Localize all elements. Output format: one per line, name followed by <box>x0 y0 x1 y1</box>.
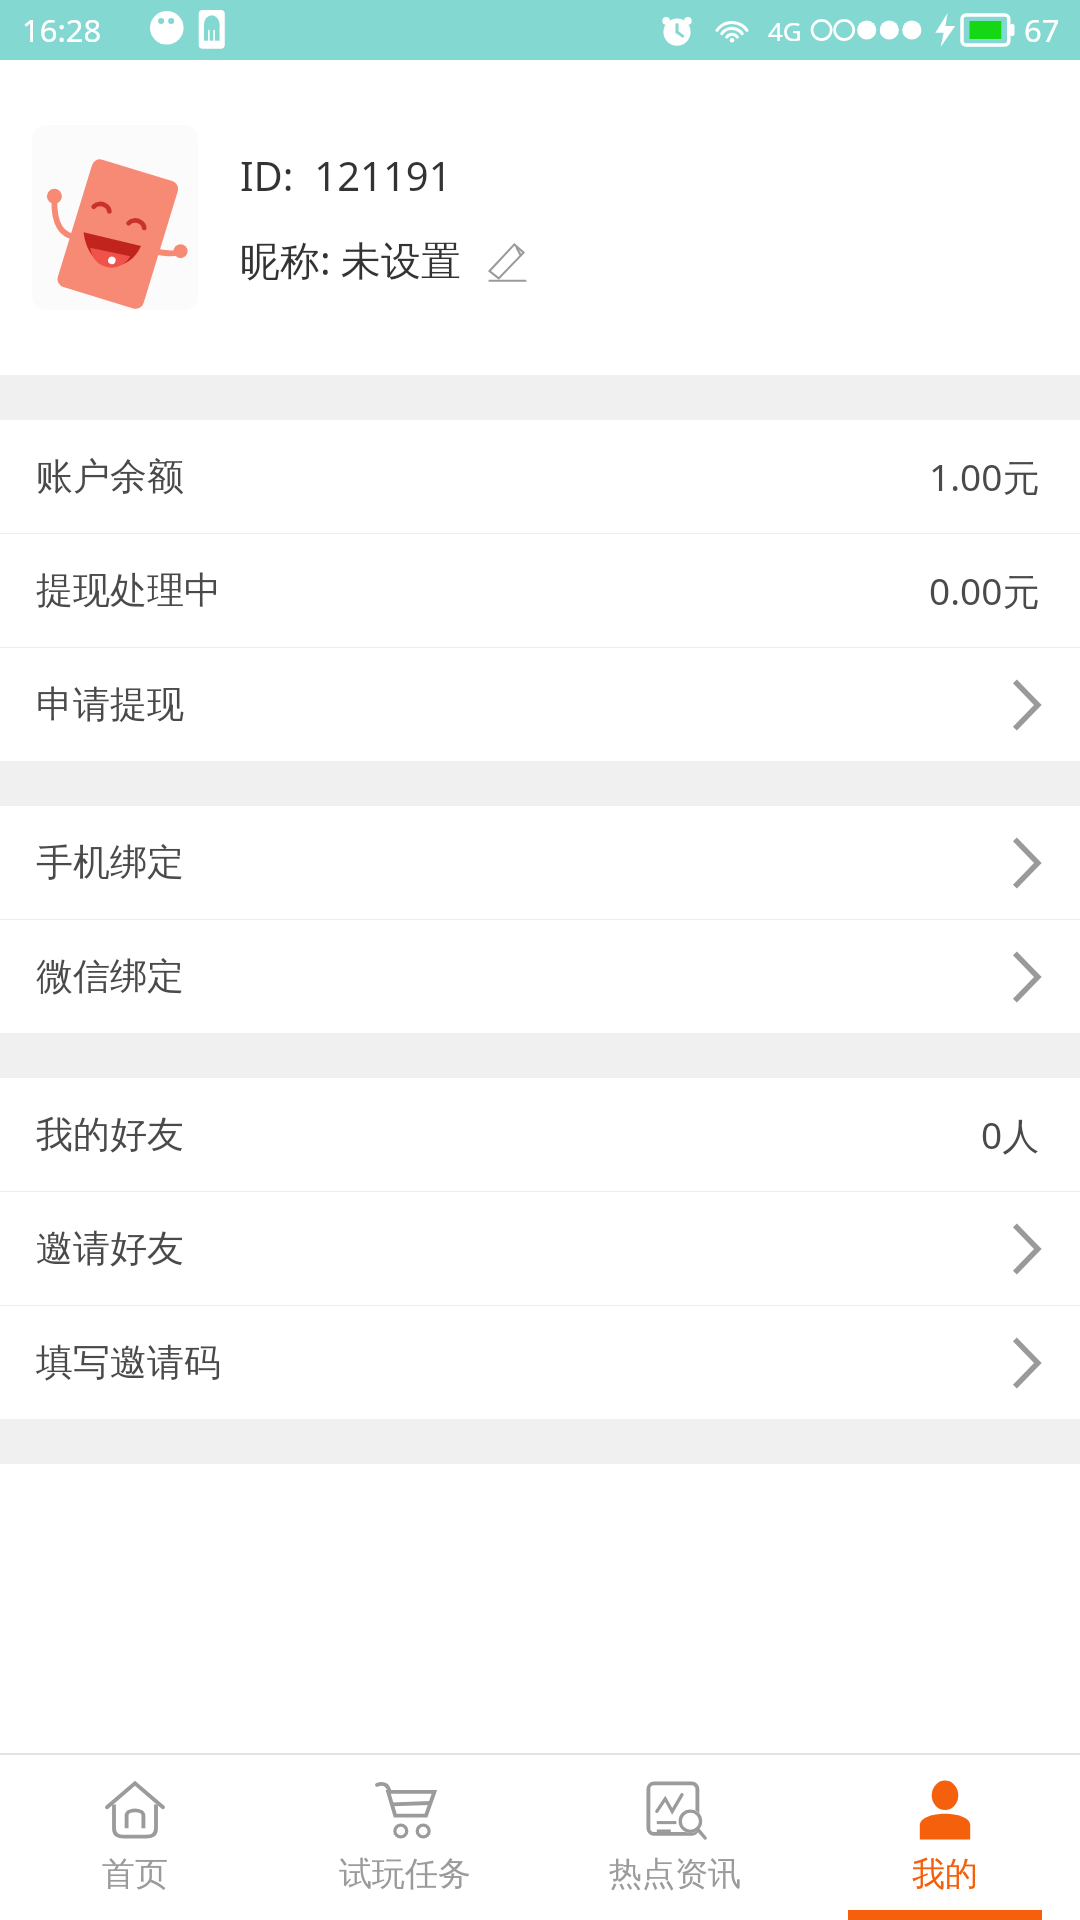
button[interactable]: 微信绑定 <box>0 920 1080 1033</box>
staticText: 67 <box>1024 9 1060 51</box>
staticText: 16:28 <box>22 9 102 51</box>
staticText: 热点资讯 <box>609 1853 741 1895</box>
button[interactable]: Profile <box>810 1755 1080 1920</box>
staticText: ID: 121191 <box>240 148 452 202</box>
button[interactable]: 账户余额 <box>0 420 1080 533</box>
staticText: 昵称: 未设置 <box>240 232 462 287</box>
other: News <box>640 1775 710 1845</box>
staticText: 提现处理中 <box>36 567 221 614</box>
staticText: 我的好友 <box>36 1111 184 1158</box>
staticText: 首页 <box>102 1853 168 1895</box>
staticText: 0.00元 <box>929 565 1040 616</box>
button[interactable]: Home <box>0 1755 270 1920</box>
button[interactable]: 邀请好友 <box>0 1192 1080 1305</box>
button[interactable]: 我的好友 <box>0 1078 1080 1191</box>
staticText: 1.00元 <box>929 451 1040 502</box>
button[interactable]: 申请提现 <box>0 648 1080 761</box>
button[interactable]: 填写邀请码 <box>0 1306 1080 1419</box>
staticText: 0人 <box>981 1109 1040 1160</box>
staticText: 微信绑定 <box>36 953 184 1000</box>
other: Edit nickname <box>484 237 530 283</box>
button[interactable]: 手机绑定 <box>0 806 1080 919</box>
button[interactable]: Avatar <box>32 125 198 310</box>
staticText: 邀请好友 <box>36 1225 184 1272</box>
staticText: 试玩任务 <box>339 1853 471 1895</box>
button[interactable]: 提现处理中 <box>0 534 1080 647</box>
staticText: 账户余额 <box>36 453 184 500</box>
staticText: 我的 <box>912 1853 978 1895</box>
staticText: 4G <box>768 13 802 48</box>
other: Home <box>100 1775 170 1845</box>
staticText: 手机绑定 <box>36 839 184 886</box>
button[interactable]: News <box>540 1755 810 1920</box>
other: Tasks <box>370 1775 440 1845</box>
staticText: 填写邀请码 <box>36 1339 221 1386</box>
button[interactable]: 昵称: 未设置 <box>240 232 530 287</box>
button[interactable]: Tasks <box>270 1755 540 1920</box>
other: Profile <box>910 1775 980 1845</box>
staticText: 申请提现 <box>36 681 184 728</box>
